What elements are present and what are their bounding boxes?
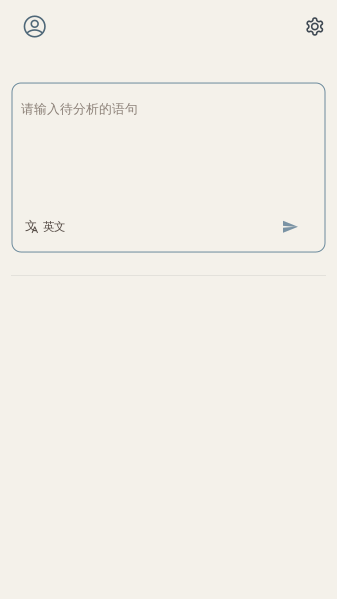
staticText: 文 (25, 218, 37, 233)
button[interactable]: 文 (26, 220, 65, 234)
button[interactable]: Account (18, 9, 52, 43)
button[interactable]: Send (283, 221, 298, 233)
staticText: 请输入待分析的语句 (21, 101, 138, 117)
button[interactable]: Settings (298, 9, 332, 43)
staticText: 英文 (43, 220, 65, 234)
